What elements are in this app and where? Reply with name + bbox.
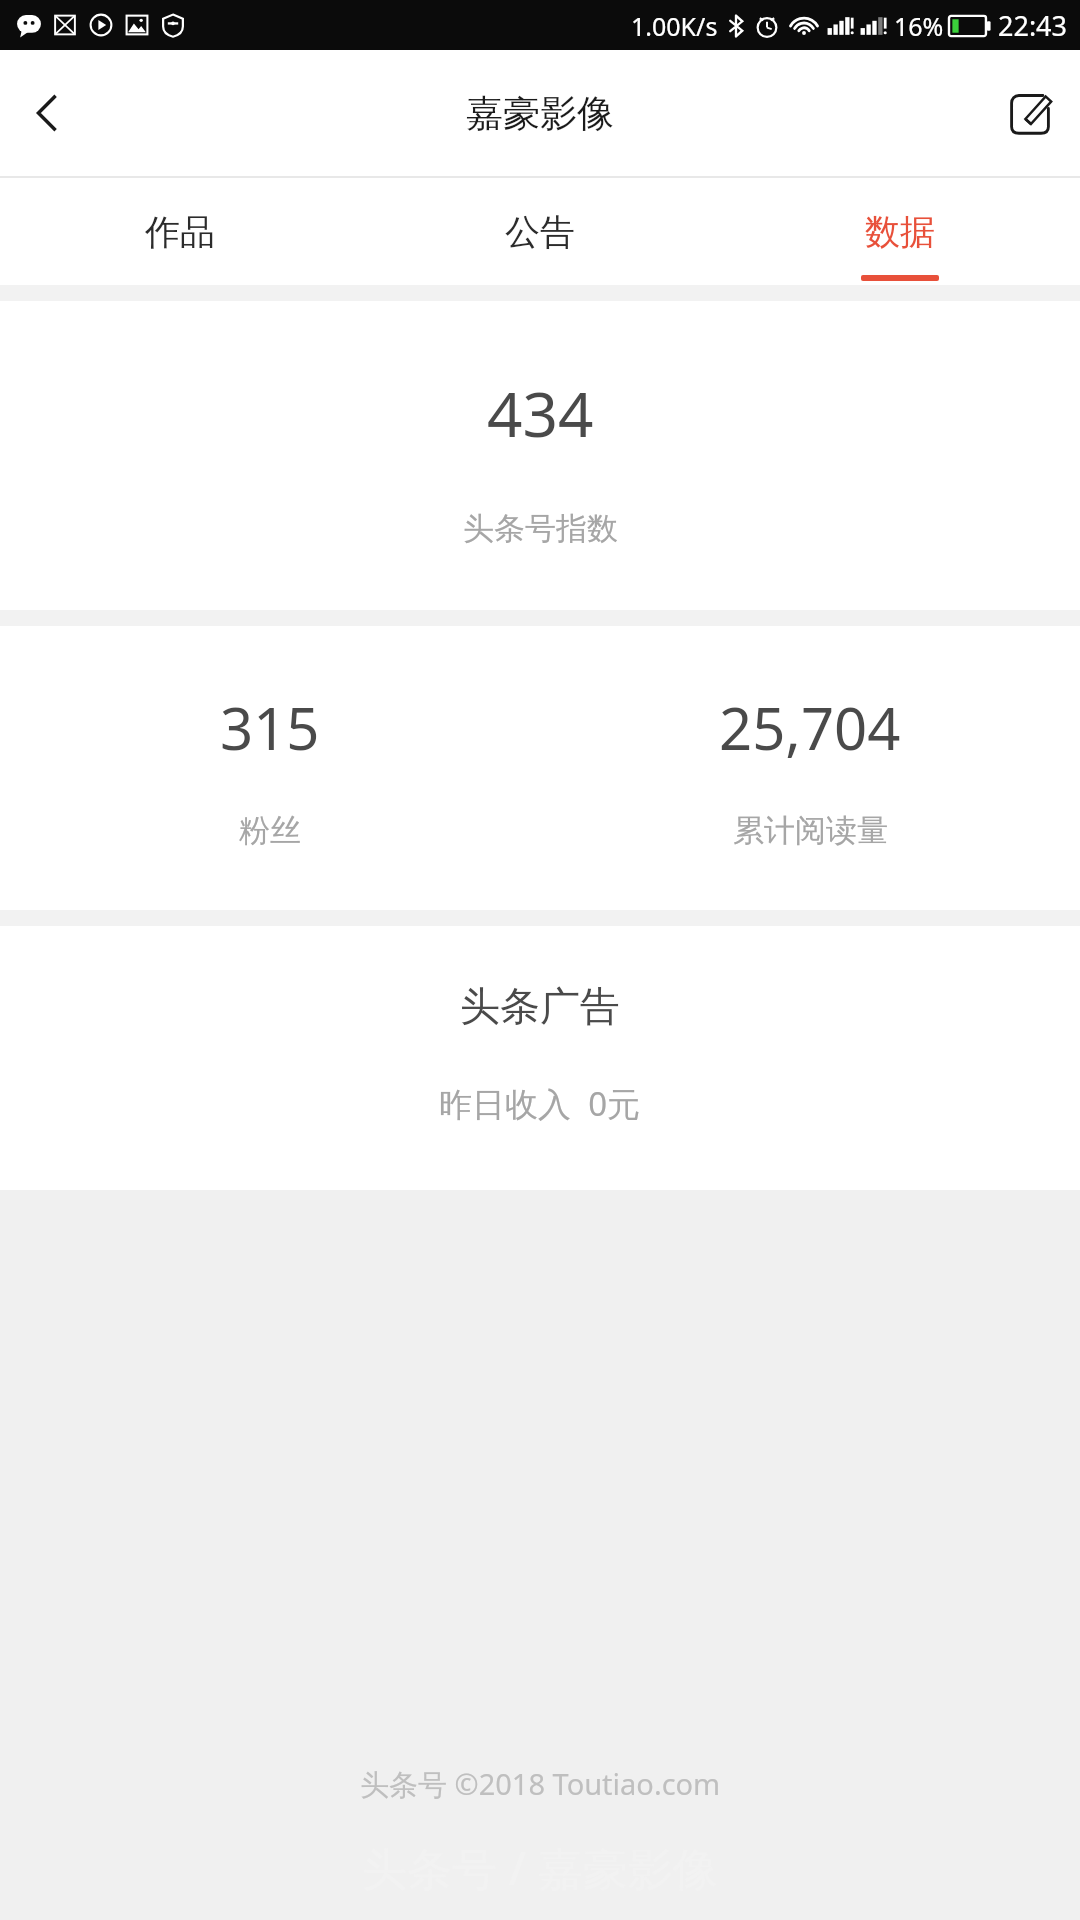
staticText: 昨日收入 0元 [439, 1081, 641, 1126]
button[interactable]: 数据 [720, 178, 1080, 285]
staticText: 头条广告 [460, 981, 620, 1031]
staticText: 1.00K/s [631, 9, 718, 43]
staticText: 434 [487, 371, 594, 455]
staticText: 公告 [505, 210, 575, 254]
staticText: 嘉豪影像 [466, 90, 614, 137]
button[interactable]: Edit [980, 63, 1080, 163]
staticText: 头条号 ©2018 Toutiao.com [360, 1764, 721, 1804]
staticText: 315 [220, 688, 320, 767]
staticText: 作品 [145, 210, 215, 254]
button[interactable]: 头条广告 [0, 926, 1080, 1190]
staticText: 25,704 [719, 688, 901, 767]
button[interactable]: 公告 [360, 178, 720, 285]
staticText: 22:43 [998, 7, 1068, 44]
button[interactable]: 315 [0, 626, 540, 910]
staticText: 数据 [865, 210, 935, 254]
staticText: 16% [894, 9, 944, 43]
button[interactable]: 434 [0, 301, 1080, 610]
button[interactable]: Back [0, 65, 96, 161]
staticText: 粉丝 [239, 811, 301, 850]
staticText: 头条号指数 [463, 509, 618, 548]
staticText: 累计阅读量 [733, 811, 888, 850]
button[interactable]: 25,704 [540, 626, 1080, 910]
button[interactable]: 作品 [0, 178, 360, 285]
